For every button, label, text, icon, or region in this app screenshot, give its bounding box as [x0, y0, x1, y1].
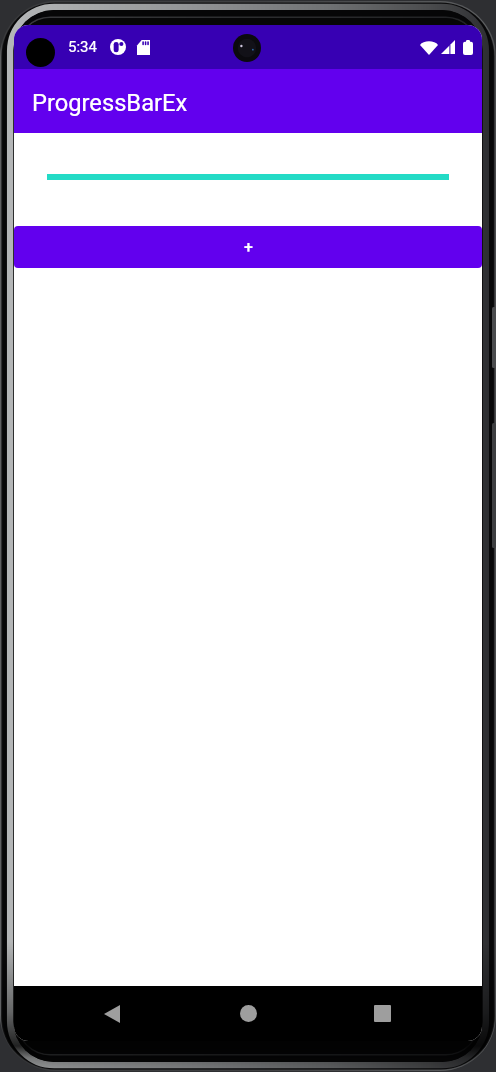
- button[interactable]: Home: [208, 986, 288, 1041]
- button[interactable]: Recents: [342, 986, 422, 1041]
- staticText: +: [244, 238, 253, 257]
- button[interactable]: Back: [72, 986, 152, 1041]
- button[interactable]: +: [14, 226, 482, 268]
- staticText: ProgressBarEx: [32, 89, 188, 117]
- button[interactable]: ProgressBarEx: [14, 69, 482, 133]
- staticText: 5:34: [68, 38, 97, 56]
